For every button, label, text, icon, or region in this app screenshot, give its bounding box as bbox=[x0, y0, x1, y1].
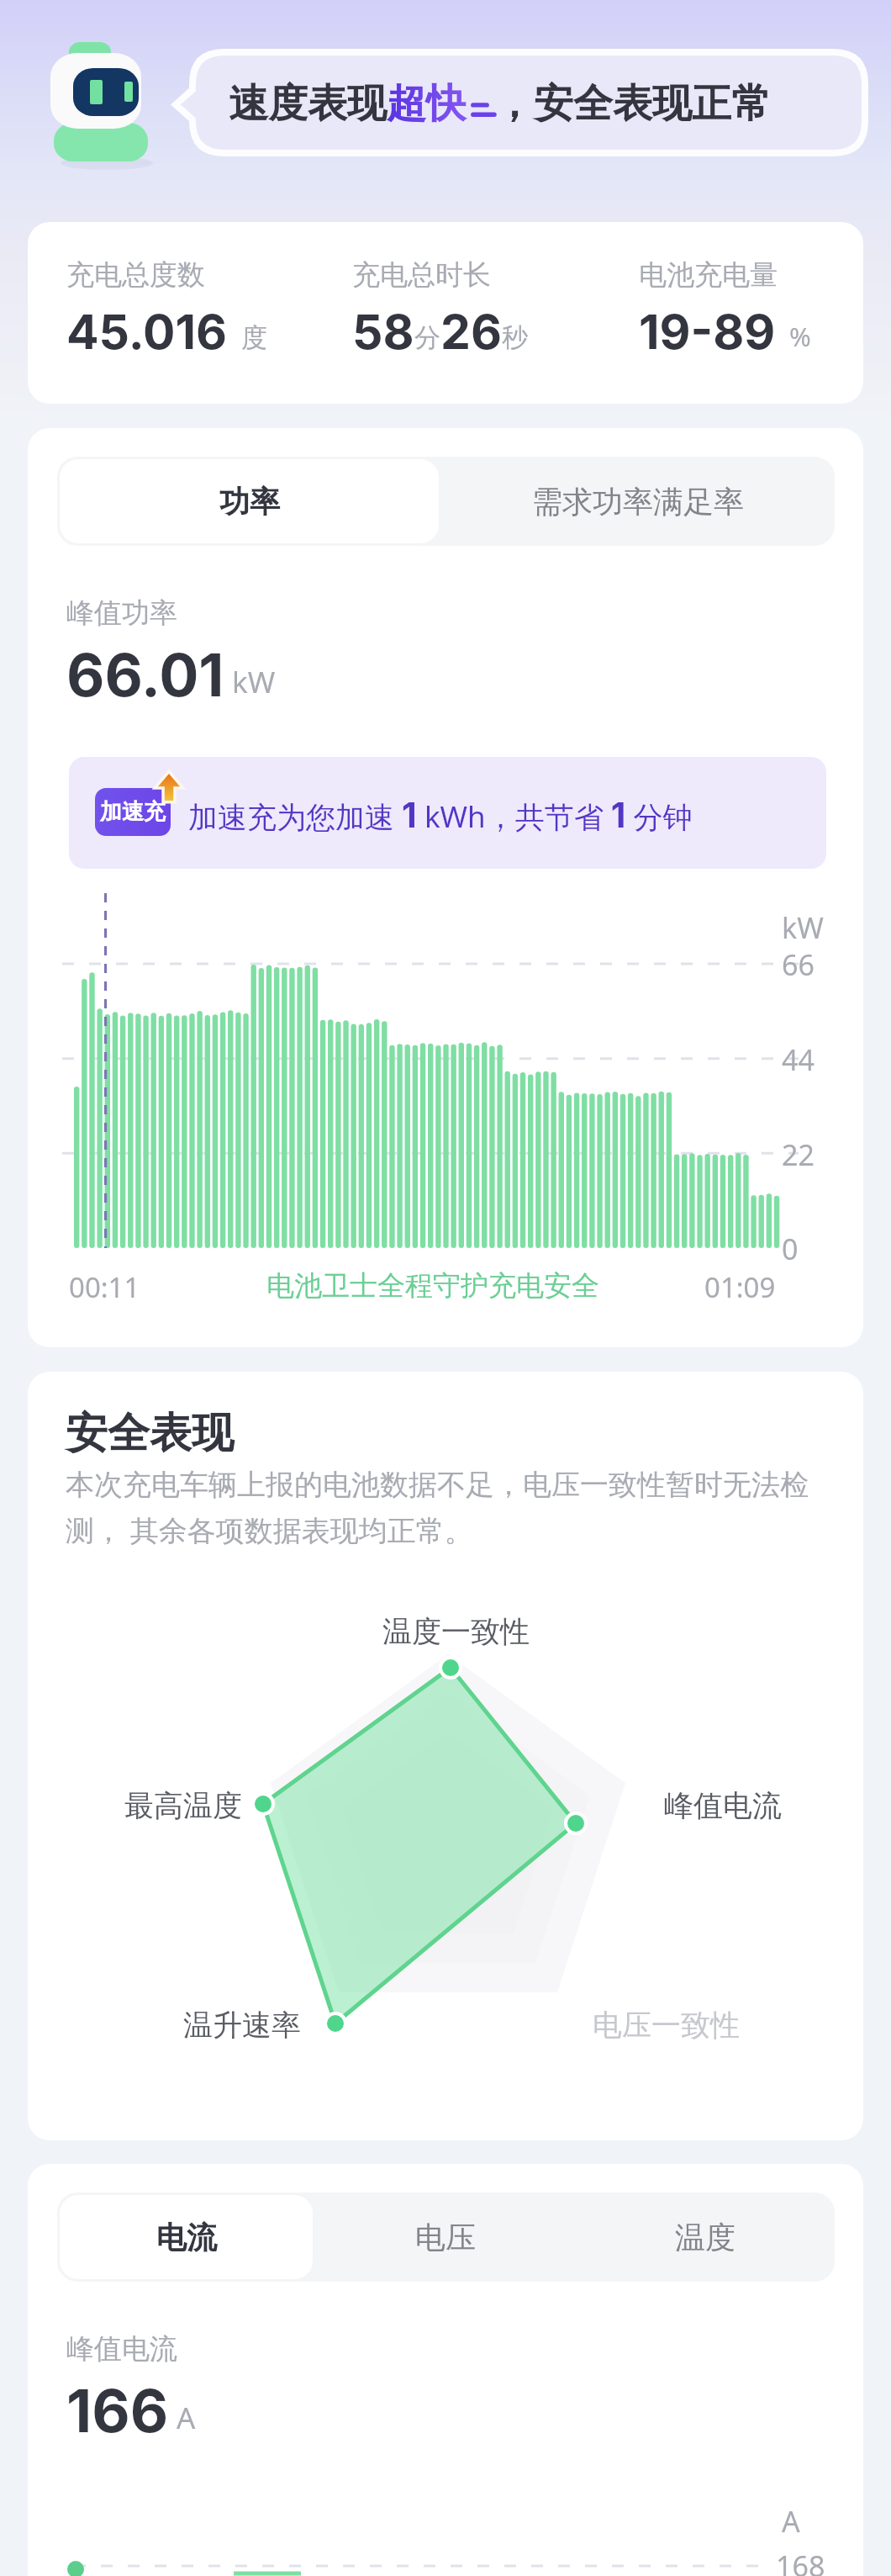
staticText: 66.01 bbox=[66, 639, 224, 711]
button[interactable]: 电压 bbox=[318, 2195, 572, 2279]
staticText: 44 bbox=[782, 1040, 815, 1079]
staticText: 充电总时长 bbox=[352, 257, 491, 293]
staticText: 安全表现 bbox=[66, 1407, 234, 1460]
staticText: kW bbox=[782, 908, 824, 947]
staticText: 需求功率满足率 bbox=[532, 483, 744, 521]
staticText: kW bbox=[224, 662, 276, 702]
staticText: 温度 bbox=[675, 2219, 735, 2256]
staticText: 峰值电流 bbox=[664, 1787, 782, 1824]
staticText: 电压一致性 bbox=[593, 2007, 740, 2044]
staticText: ，安全表现正常 bbox=[494, 79, 771, 129]
staticText: 超快 bbox=[387, 79, 466, 129]
button[interactable]: 功率 bbox=[60, 459, 439, 543]
staticText: 22 bbox=[782, 1135, 815, 1174]
staticText: 00:11 bbox=[69, 1268, 140, 1306]
button[interactable]: 温度 bbox=[577, 2195, 832, 2279]
staticText: 温度一致性 bbox=[382, 1613, 530, 1650]
staticText: 0 bbox=[782, 1230, 799, 1268]
staticText: 加速充为您加速 1 kWh，共节省 1 分钟 bbox=[188, 794, 693, 836]
staticText: 秒 bbox=[502, 321, 528, 354]
staticText: 充电总度数 bbox=[66, 257, 205, 293]
staticText: A bbox=[169, 2398, 196, 2438]
staticText: 速度表现 bbox=[229, 79, 387, 129]
staticText: 19-89 bbox=[639, 303, 776, 361]
staticText: 电池充电量 bbox=[639, 257, 778, 293]
staticText: 功率 bbox=[219, 483, 280, 521]
staticText: 166 bbox=[66, 2375, 169, 2446]
button[interactable]: 需求功率满足率 bbox=[444, 459, 832, 543]
staticText: A bbox=[782, 2502, 800, 2541]
staticText: % bbox=[776, 319, 811, 354]
staticText: 分 bbox=[414, 321, 440, 354]
staticText: 45.016 bbox=[66, 303, 228, 361]
button[interactable]: 电流 bbox=[60, 2195, 313, 2279]
staticText: 电压 bbox=[415, 2219, 476, 2256]
staticText: 58 bbox=[352, 303, 414, 361]
staticText: 加速充 bbox=[100, 798, 166, 826]
staticText: 168 bbox=[776, 2547, 825, 2576]
button[interactable]: 加速充 bbox=[69, 757, 826, 869]
staticText: 电池卫士全程守护充电安全 bbox=[266, 1268, 599, 1304]
staticText: 01:09 bbox=[704, 1268, 776, 1306]
staticText: 本次充电车辆上报的电池数据不足，电压一致性暂时无法检测， 其余各项数据表现均正常… bbox=[66, 1467, 847, 1549]
staticText: 峰值电流 bbox=[66, 2331, 177, 2367]
staticText: 温升速率 bbox=[183, 2007, 301, 2044]
staticText: 最高温度 bbox=[124, 1787, 242, 1824]
staticText: 66 bbox=[782, 945, 815, 984]
staticText: 26 bbox=[440, 303, 502, 361]
staticText: 电流 bbox=[156, 2219, 217, 2256]
staticText: 峰值功率 bbox=[66, 595, 177, 631]
staticText: 度 bbox=[228, 319, 268, 354]
